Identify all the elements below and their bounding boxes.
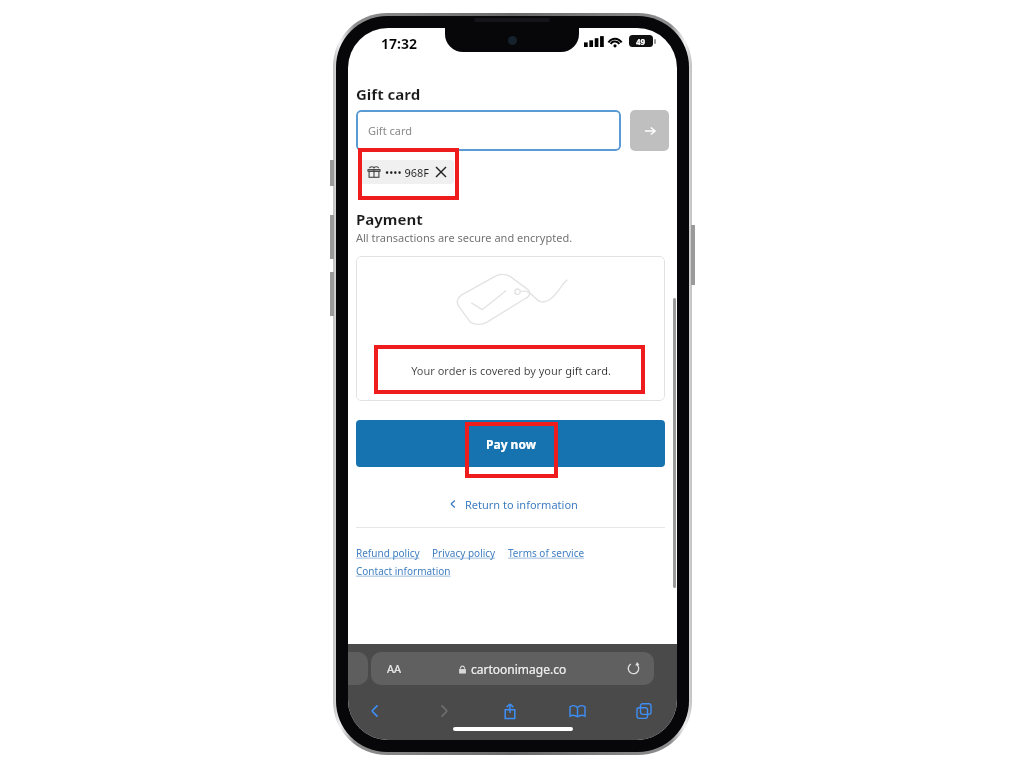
staticText: 17:32 [381,34,417,53]
button[interactable]: AA [371,652,654,685]
button[interactable]: Tabs [627,694,661,728]
staticText: Payment [356,209,423,229]
staticText: Gift card [356,84,421,104]
button[interactable]: Back [358,694,392,728]
staticText: Your order is covered by your gift card. [411,363,611,378]
button[interactable]: Contact information [356,564,451,578]
button[interactable]: Privacy policy [432,546,496,560]
staticText: All transactions are secure and encrypte… [356,230,573,245]
button[interactable]: Return to information [448,492,578,516]
button[interactable]: Pay now [356,420,665,467]
staticText: Privacy policy [432,546,496,560]
button[interactable]: Gift card [356,110,621,151]
staticText: Pay now [486,436,536,452]
button[interactable]: Refund policy [356,546,420,560]
button[interactable]: Forward [427,694,461,728]
staticText: Gift card [368,123,412,138]
staticText: Terms of service [508,546,585,560]
button[interactable]: Share [493,694,527,728]
button[interactable]: •••• 968F [360,160,454,184]
button[interactable]: Terms of service [508,546,585,560]
staticText: •••• 968F [385,165,430,180]
staticText: Refund policy [356,546,420,560]
button[interactable]: Bookmarks [560,694,594,728]
staticText: AA [387,661,402,676]
staticText: 49 [636,36,646,47]
staticText: Contact information [356,564,451,578]
staticText: cartoonimage.co [471,661,567,677]
button[interactable]: Apply gift card [630,110,669,151]
staticText: Return to information [465,497,578,512]
